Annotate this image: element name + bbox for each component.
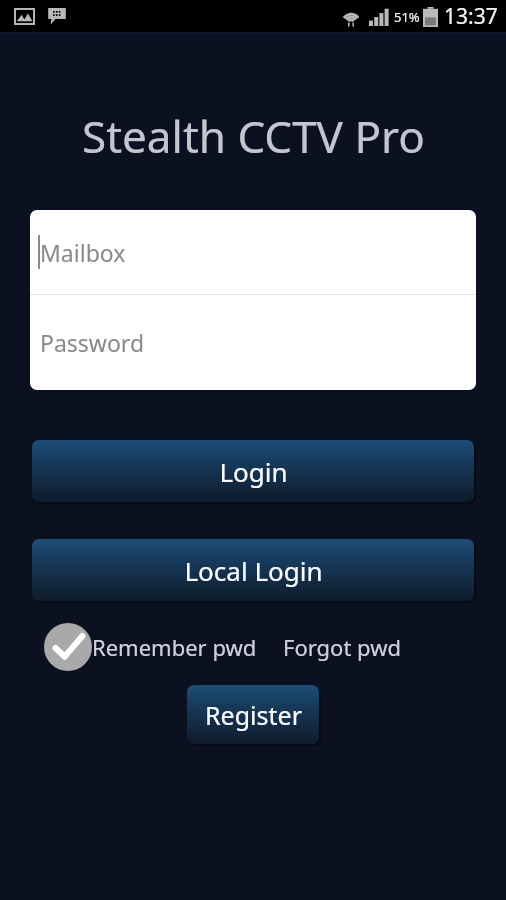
staticText: Register — [205, 698, 302, 732]
button[interactable]: Remember pwd — [44, 623, 257, 671]
button[interactable]: Login — [32, 440, 474, 502]
button[interactable]: Mailbox — [30, 210, 476, 294]
staticText: Login — [219, 454, 288, 489]
staticText: Forgot pwd — [283, 632, 402, 662]
staticText: 13:37 — [444, 2, 498, 31]
staticText: Password — [40, 327, 145, 358]
button[interactable]: Local Login — [32, 539, 474, 601]
staticText: 51% — [394, 8, 420, 26]
staticText: Stealth CCTV Pro — [82, 106, 425, 166]
staticText: Remember pwd — [92, 632, 257, 662]
button[interactable]: Password — [30, 295, 476, 390]
staticText: Mailbox — [40, 237, 126, 268]
button[interactable]: Forgot pwd — [283, 632, 402, 662]
staticText: Local Login — [184, 553, 323, 588]
button[interactable]: Register — [187, 685, 319, 744]
